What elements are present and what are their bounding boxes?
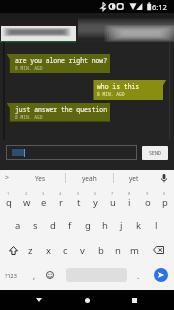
staticText: .	[137, 270, 140, 281]
staticText: n	[115, 244, 121, 257]
staticText: who is this	[97, 82, 140, 91]
button[interactable]: Conversation header	[0, 13, 174, 42]
button[interactable]: h	[96, 213, 113, 237]
button[interactable]: Voice input	[155, 170, 172, 186]
staticText: e	[41, 196, 47, 209]
staticText: v	[80, 244, 85, 257]
staticText: k	[136, 219, 142, 232]
button[interactable]: 0	[156, 188, 173, 212]
staticText: yeah	[82, 174, 97, 183]
button[interactable]: j	[113, 213, 130, 237]
staticText: m	[130, 244, 139, 257]
staticText: a	[15, 219, 21, 232]
button[interactable]: 2	[18, 188, 35, 212]
staticText: ,	[33, 270, 36, 281]
button[interactable]: v	[74, 238, 91, 262]
staticText: 7	[111, 191, 114, 196]
staticText: 8 MIN. AGO	[97, 91, 125, 97]
button[interactable]: a	[9, 213, 26, 237]
button[interactable]: Send	[154, 268, 168, 282]
staticText: w	[23, 196, 31, 209]
staticText: 8 MIN. AGO	[15, 65, 43, 71]
staticText: 3	[42, 191, 45, 196]
button[interactable]: l	[148, 213, 165, 237]
button[interactable]: More suggestions	[0, 170, 14, 186]
button[interactable]: Back	[28, 290, 49, 310]
staticText: 8	[128, 191, 131, 196]
button[interactable]: 7	[104, 188, 121, 212]
staticText: f	[68, 219, 72, 232]
staticText: h	[102, 219, 108, 232]
staticText: 6:12	[152, 2, 167, 12]
staticText: yet	[129, 174, 139, 183]
staticText: y	[93, 196, 98, 209]
button[interactable]: who is this	[97, 82, 140, 97]
staticText: 4	[59, 191, 62, 196]
staticText: 2	[25, 191, 28, 196]
staticText: d	[50, 219, 56, 232]
staticText: >	[5, 173, 10, 183]
staticText: p	[162, 196, 168, 209]
staticText: are you alone right now?	[15, 56, 108, 65]
button[interactable]: b	[92, 238, 109, 262]
staticText: SEND	[149, 150, 162, 157]
button[interactable]: f	[61, 213, 78, 237]
button[interactable]: SEND	[142, 146, 168, 160]
button[interactable]: 1	[0, 188, 17, 212]
staticText: 8 MIN. AGO	[15, 114, 43, 120]
button[interactable]: 4	[52, 188, 69, 212]
button[interactable]: 9	[139, 188, 156, 212]
staticText: u	[110, 196, 116, 209]
button[interactable]: just answer the question	[15, 105, 108, 120]
staticText: just answer the question	[15, 105, 108, 114]
button[interactable]: .	[131, 263, 145, 287]
staticText: j	[120, 219, 123, 232]
staticText: 9	[146, 191, 149, 196]
button[interactable]: Emoji	[41, 263, 58, 287]
button[interactable]: 6	[87, 188, 104, 212]
button[interactable]: z	[22, 238, 39, 262]
staticText: r	[59, 196, 63, 209]
staticText: Yes	[35, 174, 46, 183]
button[interactable]: s	[27, 213, 44, 237]
staticText: 5	[77, 191, 80, 196]
staticText: z	[28, 244, 33, 257]
staticText: o	[145, 196, 151, 209]
button[interactable]: k	[130, 213, 147, 237]
button[interactable]: Backspace	[148, 238, 168, 262]
staticText: 1	[7, 191, 10, 196]
staticText: 6	[94, 191, 97, 196]
button[interactable]: yet	[114, 170, 154, 186]
staticText: 0	[163, 191, 166, 196]
staticText: q	[6, 196, 12, 209]
button[interactable]: Message input	[6, 145, 137, 160]
button[interactable]: ,	[26, 263, 42, 287]
button[interactable]: n	[109, 238, 126, 262]
button[interactable]: yeah	[66, 170, 113, 186]
button[interactable]: m	[126, 238, 143, 262]
button[interactable]: x	[40, 238, 57, 262]
staticText: b	[98, 244, 104, 257]
button[interactable]: Home	[77, 290, 97, 310]
staticText: c	[63, 244, 68, 257]
button[interactable]: Yes	[16, 170, 65, 186]
staticText: g	[85, 219, 91, 232]
button[interactable]: 8	[121, 188, 138, 212]
button[interactable]: Shift	[3, 238, 23, 262]
button[interactable]: 5	[70, 188, 87, 212]
button[interactable]: c	[57, 238, 74, 262]
staticText: x	[46, 244, 52, 257]
button[interactable]: 3	[35, 188, 52, 212]
staticText: ?123	[5, 272, 17, 279]
button[interactable]: are you alone right now?	[15, 56, 108, 71]
staticText: l	[155, 219, 158, 232]
staticText: s	[33, 219, 38, 232]
staticText: i	[128, 196, 131, 209]
button[interactable]: ?123	[0, 263, 22, 287]
button[interactable]: g	[79, 213, 96, 237]
button[interactable]: d	[44, 213, 61, 237]
button[interactable]: Recent apps	[124, 290, 144, 310]
staticText: t	[77, 196, 81, 209]
